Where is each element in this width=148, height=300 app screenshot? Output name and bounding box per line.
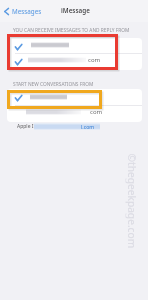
staticText: l.com: [81, 123, 95, 130]
button[interactable]: [7, 38, 142, 54]
staticText: iMessage: [61, 6, 90, 15]
staticText: com: [90, 108, 103, 116]
button[interactable]: Messages: [4, 5, 42, 17]
button[interactable]: [7, 105, 142, 122]
button[interactable]: [7, 120, 142, 133]
button[interactable]: [7, 54, 142, 70]
staticText: Messages: [12, 7, 42, 16]
staticText: Apple ID: [17, 123, 38, 130]
staticText: com: [88, 56, 101, 64]
staticText: YOU CAN RECEIVE IMESSAGES TO AND REPLY F…: [13, 27, 130, 34]
staticText: START NEW CONVERSATIONS FROM: [13, 81, 94, 88]
staticText: ©thegeekpage.com: [125, 153, 138, 248]
button[interactable]: [7, 89, 142, 105]
